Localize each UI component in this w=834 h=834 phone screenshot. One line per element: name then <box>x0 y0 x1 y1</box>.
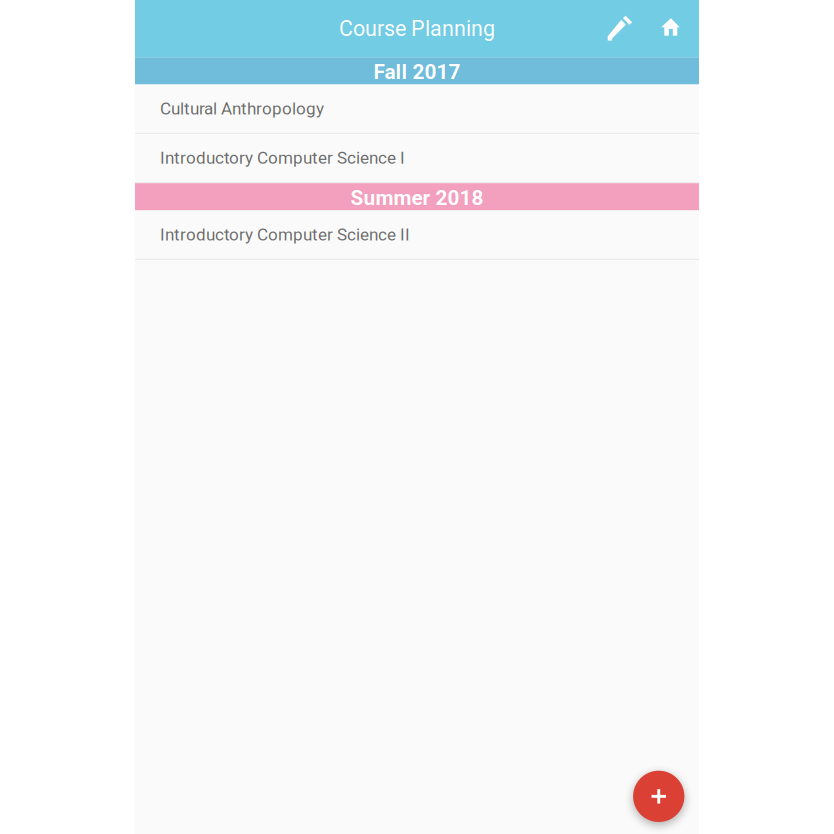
staticText: Introductory Computer Science I <box>160 148 405 168</box>
staticText: Fall 2017 <box>373 60 460 84</box>
staticText: Introductory Computer Science II <box>160 225 410 245</box>
staticText: Course Planning <box>339 16 495 41</box>
button[interactable]: Edit <box>597 2 646 56</box>
button[interactable]: Home <box>646 3 695 55</box>
staticText: Cultural Anthropology <box>160 99 324 119</box>
button[interactable]: Add course <box>633 771 684 822</box>
staticText: Summer 2018 <box>350 186 483 210</box>
button[interactable]: Cultural Anthropology <box>135 84 699 134</box>
button[interactable]: Introductory Computer Science I <box>135 134 699 183</box>
button[interactable]: Introductory Computer Science II <box>135 210 699 260</box>
